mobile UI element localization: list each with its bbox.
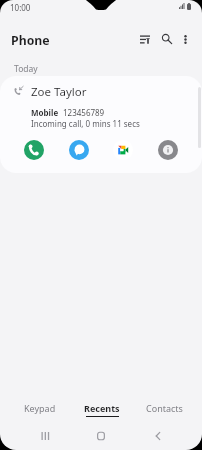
staticText: Incoming call, 0 mins 11 secs	[31, 118, 140, 129]
button[interactable]: Contacts	[135, 398, 193, 422]
staticText: 123456789	[63, 107, 105, 118]
button[interactable]: Call	[24, 140, 44, 160]
button[interactable]: Message	[69, 140, 89, 160]
button[interactable]: Video call	[113, 140, 133, 160]
staticText: Keypad	[24, 402, 56, 414]
button[interactable]: Zoe Taylor	[0, 76, 202, 173]
button[interactable]: Details	[158, 140, 178, 160]
staticText: Zoe Taylor	[31, 84, 87, 100]
button[interactable]: More options	[174, 28, 196, 50]
staticText: Mobile	[31, 107, 59, 118]
button[interactable]: Sort	[134, 28, 156, 50]
button[interactable]: Recent apps	[32, 423, 58, 449]
staticText: Recents	[84, 402, 120, 414]
button[interactable]: Back	[145, 423, 171, 449]
staticText: 10:00	[10, 2, 31, 13]
staticText: Phone	[11, 32, 50, 49]
button[interactable]: Keypad	[11, 398, 69, 422]
staticText: Contacts	[146, 402, 183, 414]
button[interactable]: Search	[156, 28, 178, 50]
staticText: Today	[14, 63, 38, 75]
button[interactable]: Home	[88, 423, 114, 449]
button[interactable]: Recents	[73, 398, 131, 422]
